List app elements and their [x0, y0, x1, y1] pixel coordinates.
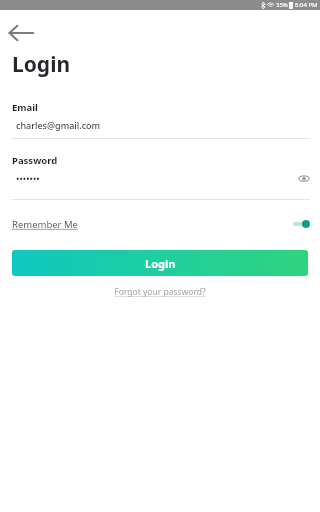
button[interactable]: Remember Me — [12, 212, 310, 236]
staticText: ••••••• — [16, 172, 40, 184]
staticText: 35% — [276, 1, 288, 9]
button[interactable]: Back — [8, 20, 44, 46]
button[interactable]: Login — [12, 250, 308, 276]
staticText: Login — [145, 256, 176, 271]
button[interactable]: Forgot your password? — [110, 284, 210, 300]
staticText: Password — [12, 154, 58, 167]
button[interactable]: Show password — [294, 168, 314, 188]
staticText: charles@gmail.com — [16, 119, 101, 131]
staticText: Remember Me — [12, 218, 78, 231]
staticText: Login — [12, 50, 71, 79]
staticText: Email — [12, 101, 38, 114]
staticText: 6:04 PM — [295, 1, 318, 9]
